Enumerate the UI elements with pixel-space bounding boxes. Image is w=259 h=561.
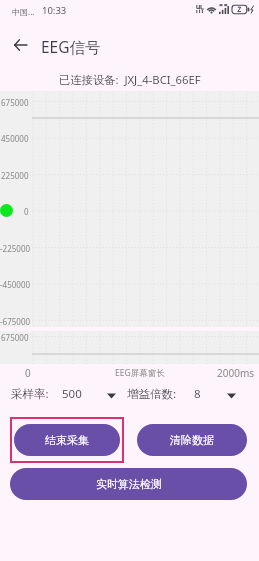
- staticText: 225000: [1, 170, 29, 181]
- staticText: 0: [24, 206, 29, 217]
- staticText: 0: [25, 366, 31, 380]
- staticText: 中国...: [12, 6, 35, 17]
- button[interactable]: 实时算法检测: [10, 468, 247, 500]
- staticText: 增益倍数:: [127, 386, 177, 402]
- staticText: -450000: [0, 279, 29, 290]
- staticText: 清除数据: [170, 433, 214, 447]
- staticText: 已连接设备: JXJ_4-BCI_66EF: [59, 72, 201, 87]
- button[interactable]: 清除数据: [137, 424, 247, 456]
- button[interactable]: Back: [0, 28, 40, 62]
- staticText: 结束采集: [45, 433, 89, 447]
- button[interactable]: 500: [58, 385, 112, 402]
- staticText: 10:33: [42, 4, 67, 17]
- staticText: 实时算法检测: [96, 477, 162, 491]
- staticText: 675000: [1, 332, 29, 343]
- staticText: 2000ms: [217, 366, 255, 380]
- staticText: 8: [194, 386, 201, 402]
- staticText: 450000: [1, 133, 29, 144]
- staticText: EEG信号: [41, 36, 101, 57]
- staticText: 675000: [1, 97, 29, 108]
- button[interactable]: 8: [190, 385, 238, 402]
- staticText: EEG屏幕窗长: [115, 367, 165, 379]
- staticText: 500: [62, 386, 82, 402]
- staticText: 采样率:: [11, 386, 49, 402]
- button[interactable]: 结束采集: [14, 424, 120, 456]
- staticText: -225000: [0, 243, 29, 254]
- staticText: -675000: [0, 316, 29, 327]
